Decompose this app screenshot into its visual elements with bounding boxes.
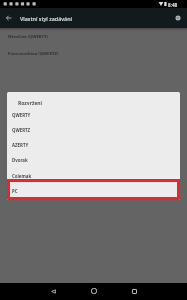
button[interactable]: Back xyxy=(45,283,61,299)
staticText: Rozvržení xyxy=(18,100,43,107)
staticText: 8:48 xyxy=(168,2,178,8)
staticText: AZERTY xyxy=(12,142,29,148)
button[interactable]: Home xyxy=(86,283,102,299)
button[interactable]: PC xyxy=(10,182,177,197)
button[interactable]: Add keyboard layout xyxy=(169,9,187,27)
staticText: PC xyxy=(12,188,18,194)
staticText: Němčina (QWERTY) xyxy=(8,34,49,40)
button[interactable]: AZERTY xyxy=(7,137,180,152)
button[interactable]: Recent apps xyxy=(126,283,142,299)
button[interactable]: Back xyxy=(0,8,18,28)
staticText: Francouzština (QWERTZ) xyxy=(8,51,59,57)
staticText: Colemak xyxy=(12,173,32,179)
button[interactable]: QWERTZ xyxy=(7,122,180,137)
staticText: Dvorak xyxy=(12,157,28,163)
button[interactable]: QWERTY xyxy=(7,107,180,122)
button[interactable]: Němčina (QWERTY) xyxy=(0,28,187,45)
staticText: Vlastní styl zadávání xyxy=(20,15,73,22)
button[interactable]: Francouzština (QWERTZ) xyxy=(0,45,187,62)
staticText: QWERTZ xyxy=(12,127,31,133)
button[interactable]: Colemak xyxy=(7,168,180,183)
button[interactable]: Dvorak xyxy=(7,152,180,167)
staticText: QWERTY xyxy=(12,112,31,118)
